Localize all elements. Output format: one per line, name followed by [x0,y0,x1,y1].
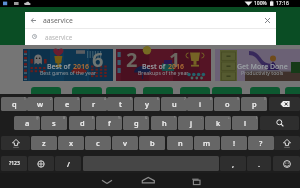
staticText: p [252,99,257,109]
button[interactable] [212,87,242,94]
staticText: o [225,99,230,109]
staticText: i [199,99,202,109]
button[interactable]: n [167,136,193,150]
staticText: 9 [237,97,239,101]
button[interactable]: Home [128,173,168,188]
button[interactable]: 9 [214,97,240,111]
button[interactable]: @ [14,116,40,130]
staticText: w [37,99,44,109]
staticText: Best of [142,62,168,72]
staticText: 2016 [168,62,185,72]
staticText: ( [256,116,257,120]
button[interactable]: x [58,136,84,150]
button[interactable]: / [55,156,81,171]
button[interactable]: 6 [23,49,113,81]
staticText: @ [36,116,39,120]
button[interactable] [31,87,61,94]
button[interactable]: ? [248,136,274,150]
staticText: f [108,118,111,128]
button[interactable]: # [41,116,67,130]
staticText: q [12,99,17,109]
button[interactable]: 0 [241,97,267,111]
button[interactable]: 2 [27,97,53,111]
button[interactable]: % [96,116,122,130]
button[interactable]: * [151,116,177,130]
staticText: 1 [24,97,26,101]
button[interactable]: Emoji [273,156,300,171]
staticText: ! [233,138,236,148]
button[interactable] [250,87,280,94]
button[interactable]: - [178,116,204,130]
staticText: 2 [50,97,52,101]
staticText: Productivity tools [241,69,284,76]
staticText: x [69,138,74,148]
staticText: - [201,116,203,120]
button[interactable]: . [247,156,271,171]
button[interactable]: 6 [134,97,160,111]
staticText: 3 [77,97,79,101]
staticText: e [65,99,70,109]
staticText: k [216,118,221,128]
button[interactable]: ?123 [1,156,27,171]
staticText: 0 [264,97,266,101]
staticText: 5 [130,97,132,101]
button[interactable]: 5 [107,97,133,111]
button[interactable]: Clear query [259,12,275,28]
button[interactable] [285,87,300,94]
button[interactable]: 4 [81,97,107,111]
button[interactable]: Back [25,12,42,28]
button[interactable]: Shift [274,136,300,150]
button[interactable]: ( [232,116,258,130]
button[interactable]: + [205,116,231,130]
button[interactable]: v [112,136,138,150]
staticText: # [63,116,66,120]
button[interactable]: ! [221,136,247,150]
button[interactable]: 7 [161,97,187,111]
button[interactable]: & [123,116,149,130]
button[interactable] [180,87,210,94]
button[interactable]: $ [69,116,95,130]
staticText: 6 [92,46,104,73]
staticText: % [118,116,121,120]
button[interactable]: Change language [28,156,54,171]
button[interactable]: 1 [1,97,27,111]
staticText: Best games of the year [40,69,96,76]
staticText: h [162,118,167,128]
button[interactable]: m [194,136,220,150]
button[interactable]: b [139,136,165,150]
button[interactable]: Get More Done [215,49,300,81]
button[interactable]: aaservice [25,28,276,45]
staticText: 2016 [73,62,90,72]
staticText: Breakups of the year [138,69,189,76]
staticText: , [232,159,235,169]
button[interactable] [106,87,136,94]
button[interactable]: Backspace [269,97,300,111]
button[interactable]: Back [87,173,127,188]
button[interactable] [143,87,173,94]
staticText: j [190,118,193,128]
button[interactable]: 8 [187,97,213,111]
button[interactable]: 3 [54,97,80,111]
button[interactable]: , [220,156,246,171]
button[interactable]: Search [260,116,299,130]
button[interactable]: Recent apps [177,173,217,188]
staticText: aaservice [45,33,73,41]
staticText: ? [259,138,263,148]
button[interactable]: c [85,136,111,150]
button[interactable]: 2 [116,49,211,81]
button[interactable] [72,87,102,94]
button[interactable]: z [31,136,57,150]
staticText: z [42,138,46,148]
staticText: / [67,159,70,169]
staticText: 100% [254,0,267,7]
staticText: & [145,116,148,120]
staticText: 17:16 [276,0,289,7]
staticText: + [228,116,230,120]
button[interactable]: Shift [1,136,30,150]
staticText: 1 [169,46,181,73]
staticText: v [123,138,127,148]
staticText: 7 [184,97,186,101]
staticText: y [145,99,149,109]
staticText: t [119,99,122,109]
